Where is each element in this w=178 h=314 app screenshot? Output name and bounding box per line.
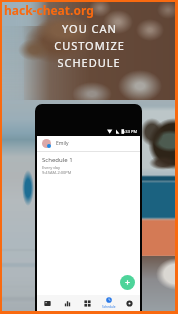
staticText: Schedule 1 (42, 156, 73, 164)
button[interactable]: Stats (57, 295, 77, 311)
staticText: hack-cheat.org (4, 2, 94, 18)
button[interactable]: Settings (119, 295, 140, 311)
button[interactable]: Add schedule (120, 275, 135, 290)
staticText: Every day (42, 165, 60, 170)
staticText: YOU CAN (62, 21, 117, 36)
button[interactable]: Photos (37, 295, 57, 311)
staticText: SCHEDULE (57, 55, 121, 70)
staticText: 9:45AM-2:00PM (42, 170, 72, 175)
button[interactable]: Apps (77, 295, 98, 311)
button[interactable]: Schedule 1 (37, 152, 140, 179)
staticText: CUSTOMIZE (54, 38, 125, 53)
button[interactable]: Schedule (98, 295, 119, 311)
staticText: 6:33 PM (122, 129, 138, 134)
staticText: Schedule (102, 305, 116, 309)
button[interactable]: Emily (37, 136, 140, 151)
staticText: Emily (56, 140, 69, 147)
